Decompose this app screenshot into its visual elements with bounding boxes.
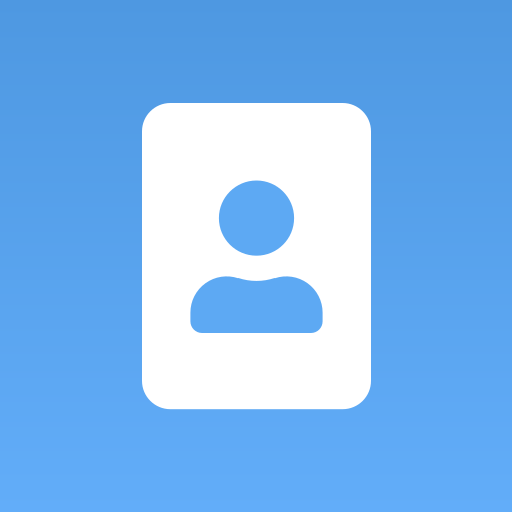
button[interactable]: Contact card	[142, 103, 371, 409]
